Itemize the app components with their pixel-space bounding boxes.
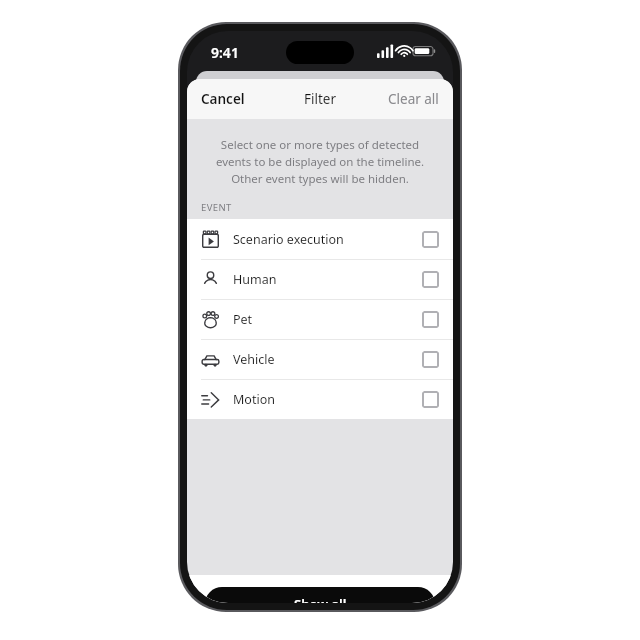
button[interactable]: Clear all xyxy=(374,79,453,119)
staticText: 9:41 xyxy=(211,43,239,62)
button[interactable]: Scenario execution xyxy=(187,219,453,259)
staticText: Motion xyxy=(233,391,422,408)
button[interactable]: Vehicle xyxy=(187,339,453,379)
button[interactable]: Pet xyxy=(187,299,453,339)
staticText: EVENT xyxy=(201,201,232,214)
staticText: Filter xyxy=(304,90,337,108)
staticText: Pet xyxy=(233,311,422,328)
staticText: Vehicle xyxy=(233,351,422,368)
staticText: Select one or more types of detected eve… xyxy=(207,137,433,187)
button[interactable]: Motion xyxy=(187,379,453,419)
staticText: Scenario execution xyxy=(233,231,422,248)
staticText: Show all xyxy=(294,595,347,603)
staticText: Cancel xyxy=(201,90,245,108)
staticText: Human xyxy=(233,271,422,288)
staticText: Clear all xyxy=(388,90,439,108)
button[interactable]: Show all xyxy=(205,587,435,603)
button[interactable]: Cancel xyxy=(187,79,259,119)
button[interactable]: Human xyxy=(187,259,453,299)
